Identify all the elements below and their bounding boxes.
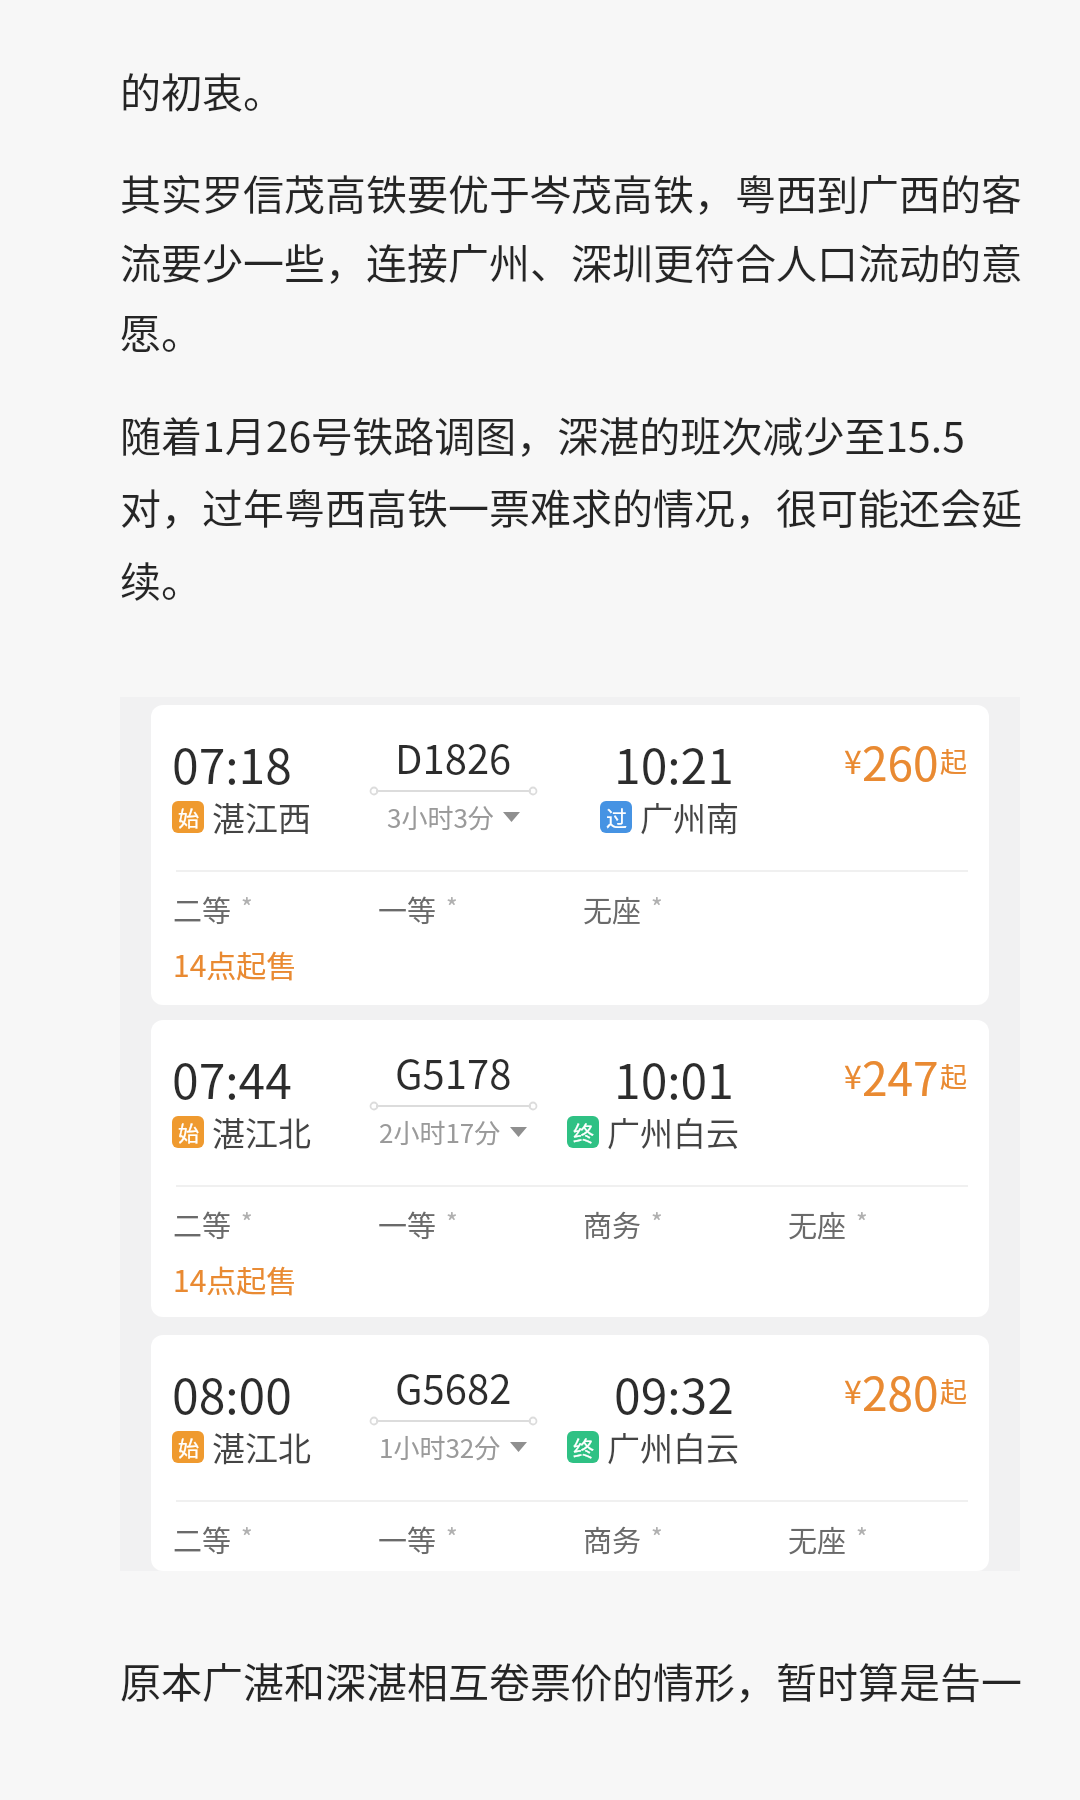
staticText: 一等 — [378, 1518, 437, 1560]
staticText: 10:21 — [614, 728, 734, 798]
button[interactable]: 08:00 — [151, 1335, 989, 1571]
staticText: 起 — [940, 1056, 967, 1095]
staticText: 二等 — [173, 1203, 232, 1245]
staticText: D1826 — [395, 728, 512, 786]
button[interactable]: 商务 — [583, 1518, 788, 1560]
staticText: 二等 — [173, 888, 232, 930]
staticText: * — [446, 888, 458, 924]
staticText: 广州白云 — [607, 1423, 739, 1471]
staticText: 无座 — [788, 1203, 847, 1245]
staticText: G5178 — [395, 1043, 512, 1101]
button[interactable]: 无座 — [583, 888, 788, 930]
staticText: 始 — [178, 802, 199, 832]
staticText: 终 — [573, 1117, 594, 1147]
staticText: 的初衷。 — [120, 60, 1022, 119]
staticText: 2小时17分 — [379, 1113, 501, 1151]
button[interactable]: 商务 — [583, 1203, 788, 1245]
staticText: 原本广湛和深湛相互卷票价的情形，暂时算是告一 — [120, 1650, 1022, 1709]
staticText: 08:00 — [172, 1358, 292, 1428]
button[interactable]: 二等 — [173, 888, 378, 930]
button[interactable]: Show trip details — [379, 1113, 527, 1151]
staticText: * — [446, 1203, 458, 1239]
staticText: ¥ — [844, 737, 862, 783]
staticText: 3小时3分 — [387, 798, 494, 836]
staticText: 起 — [940, 741, 967, 780]
staticText: 260 — [862, 728, 939, 795]
staticText: 始 — [178, 1117, 199, 1147]
staticText: * — [241, 1518, 253, 1554]
staticText: 其实罗信茂高铁要优于岑茂高铁，粤西到广西的客流要少一些，连接广州、深圳更符合人口… — [120, 162, 1022, 361]
staticText: G5682 — [395, 1358, 512, 1416]
button[interactable]: 二等 — [173, 1518, 378, 1560]
button[interactable]: 无座 — [788, 1203, 963, 1245]
staticText: * — [446, 1518, 458, 1554]
button[interactable]: 07:18 — [151, 705, 989, 1005]
staticText: 商务 — [583, 1203, 642, 1245]
button[interactable]: Show trip details — [387, 798, 520, 836]
staticText: 过 — [606, 802, 627, 832]
staticText: 无座 — [788, 1518, 847, 1560]
staticText: 无座 — [583, 888, 642, 930]
staticText: 247 — [862, 1043, 939, 1110]
staticText: 随着1月26号铁路调图，深湛的班次减少至15.5对，过年粤西高铁一票难求的情况，… — [120, 404, 1022, 609]
button[interactable]: 一等 — [378, 1203, 583, 1245]
staticText: 终 — [573, 1432, 594, 1462]
button[interactable]: 二等 — [173, 1203, 378, 1245]
staticText: 14点起售 — [173, 1257, 297, 1300]
button[interactable]: Show trip details — [379, 1428, 527, 1466]
staticText: * — [651, 888, 663, 924]
staticText: 湛江西 — [212, 793, 311, 841]
staticText: * — [241, 888, 253, 924]
staticText: 广州南 — [640, 793, 739, 841]
staticText: 起 — [940, 1371, 967, 1410]
staticText: 一等 — [378, 1203, 437, 1245]
staticText: 广州白云 — [607, 1108, 739, 1156]
staticText: * — [856, 1518, 868, 1554]
staticText: 湛江北 — [212, 1108, 311, 1156]
button[interactable]: 07:44 — [151, 1020, 989, 1317]
staticText: ¥ — [844, 1367, 862, 1413]
staticText: 09:32 — [614, 1358, 734, 1428]
staticText: ¥ — [844, 1052, 862, 1098]
staticText: * — [651, 1203, 663, 1239]
staticText: * — [241, 1203, 253, 1239]
staticText: 湛江北 — [212, 1423, 311, 1471]
button[interactable]: 一等 — [378, 888, 583, 930]
staticText: * — [651, 1518, 663, 1554]
staticText: 始 — [178, 1432, 199, 1462]
staticText: 商务 — [583, 1518, 642, 1560]
staticText: * — [856, 1203, 868, 1239]
staticText: 07:44 — [172, 1043, 292, 1113]
staticText: 07:18 — [172, 728, 292, 798]
staticText: 10:01 — [614, 1043, 734, 1113]
staticText: 14点起售 — [173, 942, 297, 985]
staticText: 二等 — [173, 1518, 232, 1560]
button[interactable]: 一等 — [378, 1518, 583, 1560]
staticText: 一等 — [378, 888, 437, 930]
staticText: 1小时32分 — [379, 1428, 501, 1466]
staticText: 280 — [862, 1358, 939, 1425]
button[interactable]: 无座 — [788, 1518, 963, 1560]
